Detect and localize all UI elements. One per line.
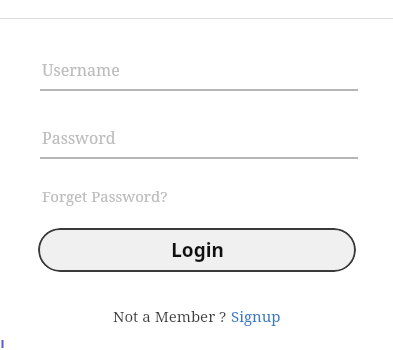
staticText: Username	[42, 59, 120, 81]
staticText: Password	[42, 127, 116, 149]
other: Cursor	[1, 340, 4, 348]
button[interactable]: Username	[40, 55, 358, 91]
staticText: Forget Password?	[42, 186, 168, 206]
button[interactable]: Forget Password?	[40, 184, 170, 208]
button[interactable]: Signup	[231, 306, 281, 326]
button[interactable]: Password	[40, 123, 358, 159]
staticText: Login	[171, 237, 224, 263]
staticText: Signup	[231, 306, 281, 326]
staticText: Not a Member ?	[113, 306, 231, 326]
button[interactable]: Login	[38, 228, 356, 272]
